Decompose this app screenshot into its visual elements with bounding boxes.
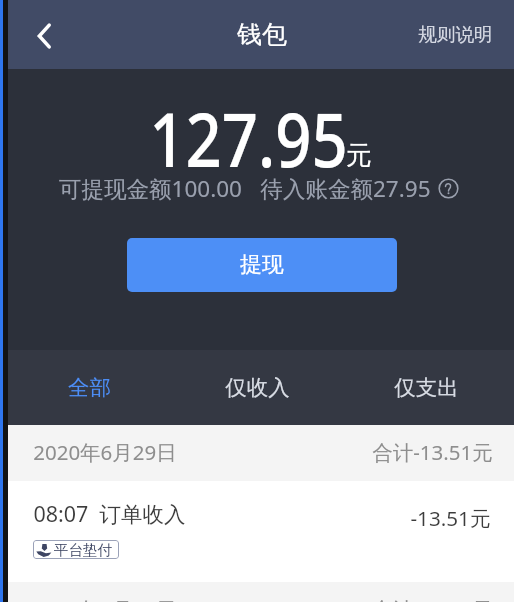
staticText: 钱包 — [237, 19, 287, 50]
staticText: 提现 — [240, 251, 284, 279]
staticText: 可提现金额100.00 — [59, 173, 242, 204]
button[interactable]: 仅支出 — [345, 350, 514, 425]
staticText: 合计-13.51元 — [372, 438, 493, 466]
staticText: 2020年6月28日 — [33, 595, 177, 602]
staticText: 2020年6月29日 — [33, 438, 177, 466]
staticText: 127.95 — [149, 87, 348, 189]
staticText: 仅收入 — [225, 374, 290, 401]
button[interactable]: Back — [20, 12, 66, 58]
staticText: 仅支出 — [394, 374, 459, 401]
button[interactable]: 提现 — [127, 238, 397, 292]
staticText: 全部 — [68, 374, 111, 401]
staticText: 平台垫付 — [54, 541, 112, 559]
staticText: 待入账金额27.95 — [260, 173, 431, 204]
staticText: 08:07 订单收入 — [33, 499, 186, 528]
staticText: 元 — [346, 139, 372, 172]
staticText: 合计-20.00元 — [372, 595, 493, 602]
staticText: -13.51元 — [410, 504, 491, 532]
staticText: 规则说明 — [418, 23, 493, 46]
button[interactable]: 仅收入 — [176, 350, 345, 425]
button[interactable]: 08:07 订单收入 — [8, 481, 514, 582]
button[interactable]: 全部 — [8, 350, 176, 425]
button[interactable]: 规则说明 — [418, 23, 493, 46]
